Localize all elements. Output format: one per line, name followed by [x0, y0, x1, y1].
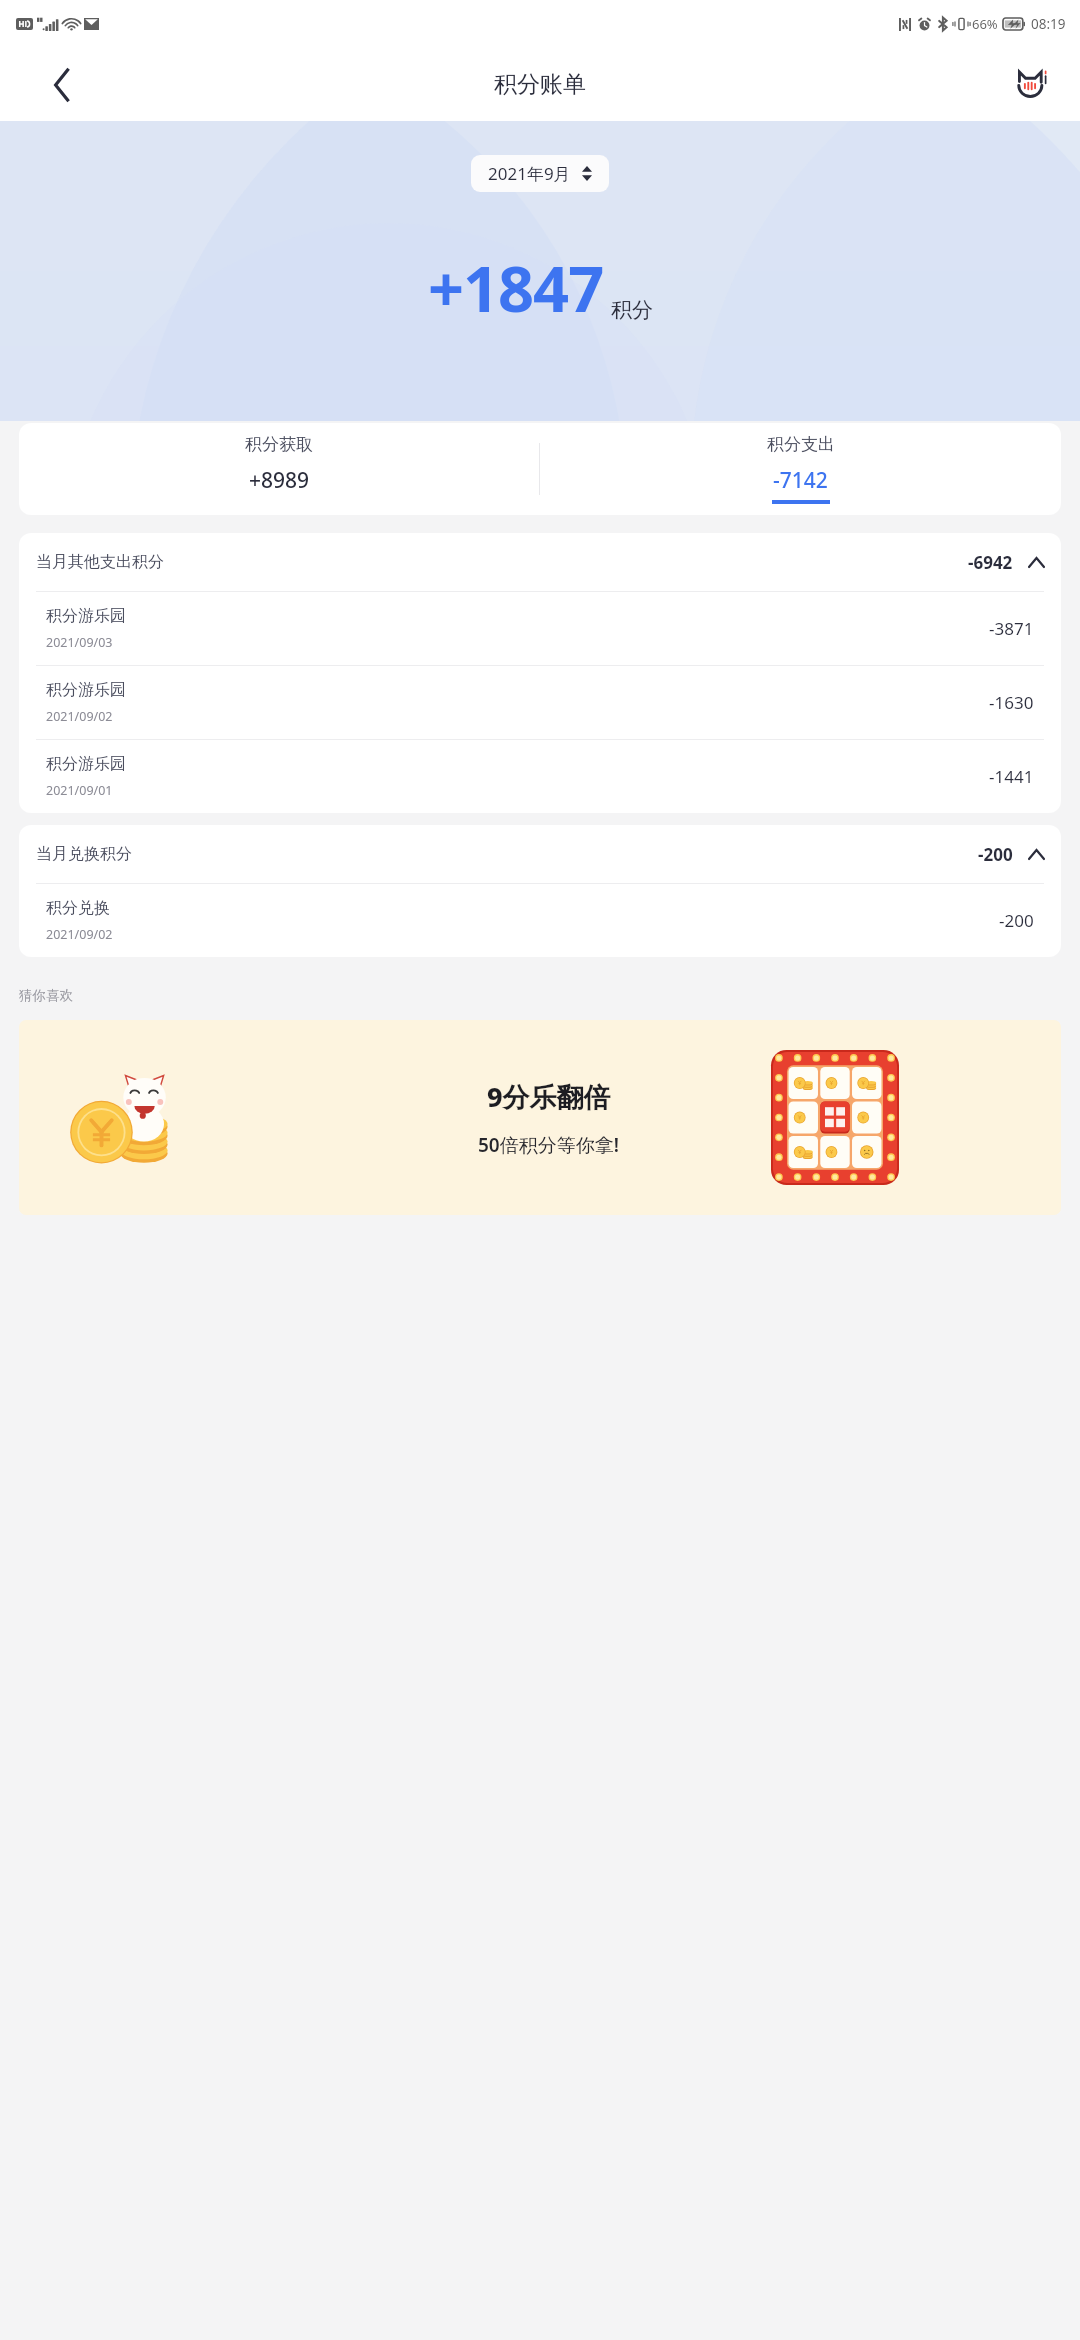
- staticText: -1630: [989, 691, 1034, 714]
- staticText: 积分游乐园: [46, 606, 126, 626]
- staticText: -200: [978, 843, 1013, 866]
- staticText: 积分获取: [245, 434, 313, 455]
- staticText: 9分乐翻倍: [487, 1078, 611, 1115]
- staticText: 2021/09/03: [46, 634, 113, 651]
- button[interactable]: 积分游乐园: [19, 740, 1061, 813]
- staticText: 2021/09/02: [46, 708, 113, 725]
- staticText: 2021/09/02: [46, 926, 113, 943]
- staticText: 积分账单: [494, 70, 586, 99]
- button[interactable]: Customer service: [1008, 62, 1054, 108]
- button[interactable]: 积分游乐园: [19, 592, 1061, 665]
- button[interactable]: 积分游乐园: [19, 666, 1061, 739]
- staticText: -7142: [773, 466, 828, 495]
- staticText: +1847: [428, 245, 604, 331]
- staticText: 当月兑换积分: [36, 844, 132, 864]
- staticText: -6942: [968, 551, 1013, 574]
- staticText: 当月其他支出积分: [36, 552, 164, 572]
- staticText: -3871: [989, 617, 1034, 640]
- staticText: +8989: [249, 466, 310, 495]
- staticText: 猜你喜欢: [19, 987, 73, 1004]
- button[interactable]: 积分获取: [19, 423, 539, 515]
- staticText: 08:19: [1031, 15, 1066, 33]
- staticText: 积分: [611, 297, 653, 323]
- staticText: 积分支出: [767, 434, 835, 455]
- staticText: -1441: [989, 765, 1034, 788]
- staticText: 积分兑换: [46, 898, 110, 918]
- staticText: 积分游乐园: [46, 754, 126, 774]
- staticText: 2021年9月: [488, 162, 571, 185]
- staticText: 积分游乐园: [46, 680, 126, 700]
- staticText: 2021/09/01: [46, 782, 113, 799]
- button[interactable]: 当月兑换积分: [19, 825, 1061, 883]
- button[interactable]: 2021年9月: [471, 155, 609, 192]
- button[interactable]: 积分支出: [540, 423, 1061, 515]
- button[interactable]: 当月其他支出积分: [19, 533, 1061, 591]
- button[interactable]: 9分乐翻倍: [19, 1020, 1061, 1215]
- button[interactable]: Back: [40, 63, 84, 107]
- staticText: 66%: [972, 15, 998, 33]
- staticText: -200: [999, 909, 1034, 932]
- staticText: 50倍积分等你拿!: [478, 1132, 619, 1158]
- button[interactable]: 积分兑换: [19, 884, 1061, 957]
